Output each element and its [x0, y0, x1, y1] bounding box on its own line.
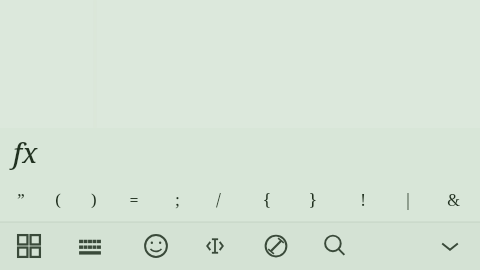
staticText: &	[447, 188, 460, 211]
staticText: }	[309, 188, 317, 211]
button[interactable]: ”	[3, 176, 39, 222]
staticText: =	[129, 188, 139, 211]
button[interactable]: Hide keyboard	[428, 224, 472, 268]
button[interactable]: Text editing	[193, 224, 237, 268]
button[interactable]: &	[435, 176, 471, 222]
button[interactable]: =	[116, 176, 152, 222]
button[interactable]: )	[76, 176, 112, 222]
staticText: {	[263, 188, 271, 211]
button[interactable]: Symbols keyboard	[7, 224, 51, 268]
staticText: (	[55, 188, 61, 211]
button[interactable]: }	[295, 176, 331, 222]
button[interactable]: Link	[254, 224, 298, 268]
button[interactable]: (	[40, 176, 76, 222]
button[interactable]: {	[249, 176, 285, 222]
staticText: ”	[17, 188, 25, 211]
staticText: !	[360, 188, 366, 211]
staticText: /	[216, 188, 221, 211]
button[interactable]: Search	[313, 224, 357, 268]
button[interactable]: ;	[159, 176, 195, 222]
button[interactable]: !	[345, 176, 381, 222]
button[interactable]: Emoji	[134, 224, 178, 268]
button[interactable]: fx	[0, 128, 480, 176]
staticText: |	[403, 188, 413, 211]
button[interactable]: |	[390, 176, 426, 222]
staticText: )	[91, 188, 97, 211]
button[interactable]: /	[200, 176, 236, 222]
staticText: fx	[13, 134, 38, 171]
staticText: ;	[175, 188, 180, 211]
button[interactable]: Keyboard layout	[68, 224, 112, 268]
